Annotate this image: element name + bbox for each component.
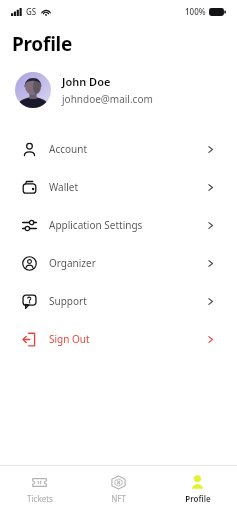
staticText: Application Settings: [49, 218, 143, 232]
staticText: Organizer: [49, 256, 96, 270]
staticText: GS: [26, 6, 37, 17]
staticText: johndoe@mail.com: [62, 92, 153, 106]
button[interactable]: Account: [0, 130, 237, 168]
button[interactable]: John Doe: [0, 69, 237, 111]
button[interactable]: Organizer: [0, 244, 237, 282]
button[interactable]: Profile: [158, 466, 237, 512]
staticText: Profile: [185, 493, 211, 504]
staticText: Wallet: [49, 180, 79, 194]
staticText: Tickets: [27, 493, 53, 504]
staticText: John Doe: [62, 74, 111, 89]
staticText: Account: [49, 142, 88, 156]
button[interactable]: NFT: [79, 466, 158, 512]
staticText: 100%: [185, 6, 206, 17]
button[interactable]: Support: [0, 282, 237, 320]
button[interactable]: Sign Out: [0, 320, 237, 358]
staticText: NFT: [111, 493, 126, 504]
staticText: Profile: [12, 31, 73, 57]
button[interactable]: Tickets: [0, 466, 79, 512]
button[interactable]: Wallet: [0, 168, 237, 206]
staticText: Sign Out: [49, 332, 90, 346]
button[interactable]: Application Settings: [0, 206, 237, 244]
staticText: Support: [49, 294, 87, 308]
